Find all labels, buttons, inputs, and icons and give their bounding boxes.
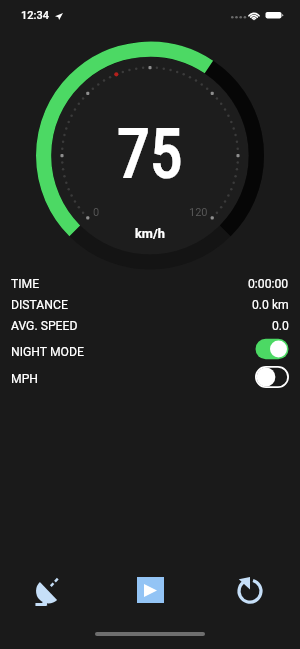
button[interactable]: GPS satellite — [26, 573, 66, 613]
button[interactable]: DISTANCE — [0, 294, 300, 315]
button[interactable]: Start — [130, 570, 170, 610]
staticText: 120 — [189, 206, 208, 219]
button[interactable]: Reset — [230, 569, 270, 609]
staticText: AVG. SPEED — [11, 319, 78, 333]
staticText: DISTANCE — [11, 298, 68, 312]
staticText: 12:34 — [21, 9, 49, 22]
staticText: NIGHT MODE — [11, 345, 84, 359]
staticText: 0.0 km — [252, 298, 289, 312]
staticText: 0:00:00 — [248, 277, 289, 291]
staticText: 0 — [93, 206, 100, 219]
staticText: km/h — [135, 226, 165, 241]
staticText: TIME — [11, 277, 40, 291]
staticText: MPH — [11, 372, 39, 386]
button[interactable]: AVG. SPEED — [0, 315, 300, 336]
button[interactable]: TIME — [0, 273, 300, 294]
button[interactable]: MPH — [0, 366, 300, 392]
staticText: 0.0 — [272, 319, 289, 333]
button[interactable]: NIGHT MODE — [0, 338, 300, 366]
staticText: 75 — [117, 116, 183, 193]
